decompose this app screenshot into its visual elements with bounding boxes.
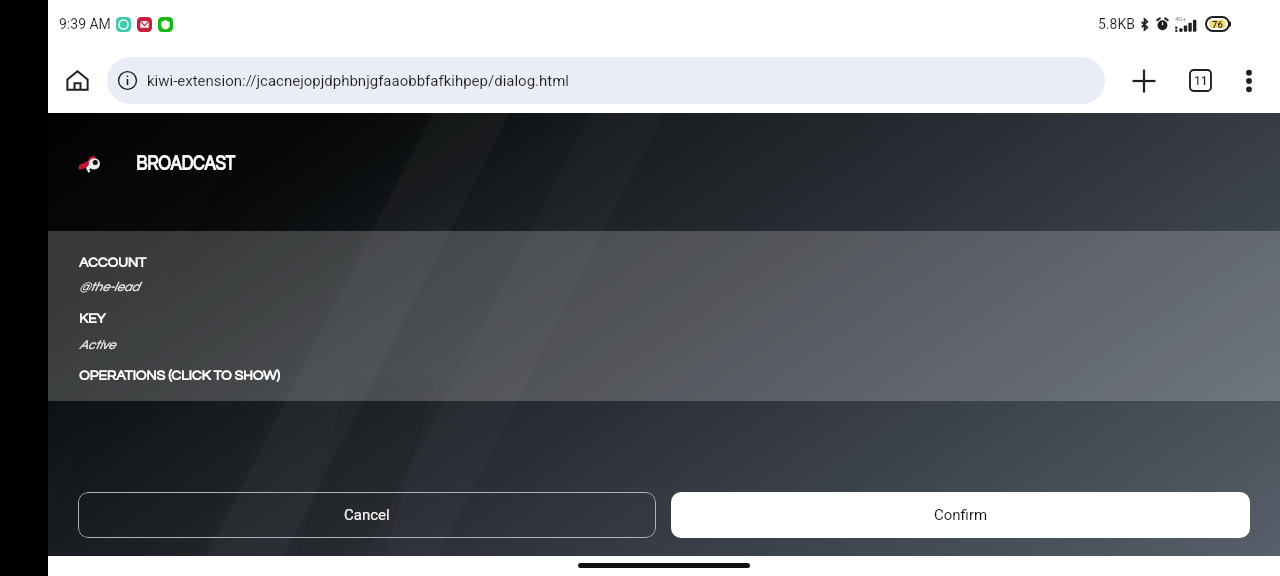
staticText: ACCOUNT [79,256,147,270]
button[interactable]: OPERATIONS (CLICK TO SHOW) [79,369,280,383]
staticText: BROADCAST [136,153,235,175]
staticText: Active [79,338,116,351]
staticText: 4G+ [1175,15,1186,22]
button[interactable]: Home [48,48,107,113]
staticText: kiwi-extension://jcacnejopjdphbnjgfaaobb… [147,72,569,90]
staticText: Cancel [344,506,390,524]
button[interactable]: Tab switcher, 11 tabs [1182,48,1218,113]
staticText: 9:39 AM [59,16,111,32]
staticText: @the-lead [79,280,139,293]
staticText: 5.8KB [1098,16,1135,32]
button[interactable]: New tab [1105,48,1182,113]
button[interactable]: Cancel [78,492,656,538]
staticText: 76 [1212,19,1223,30]
button[interactable]: Confirm [671,492,1250,538]
staticText: Confirm [934,506,988,524]
button[interactable]: kiwi-extension://jcacnejopjdphbnjgfaaobb… [107,57,1105,104]
staticText: KEY [79,312,106,326]
button[interactable]: More options [1218,48,1280,113]
staticText: 11 [1194,74,1208,88]
